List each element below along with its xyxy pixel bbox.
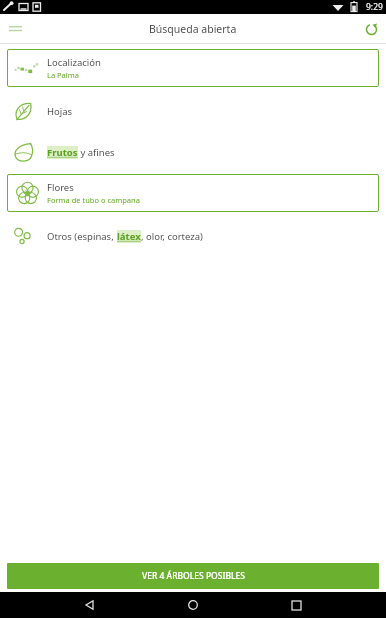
staticText: Búsqueda abierta (149, 22, 237, 36)
staticText: látex (117, 230, 141, 243)
staticText: La Palma (47, 70, 79, 80)
button[interactable]: Home (180, 592, 206, 618)
button[interactable]: Hojas (0, 92, 386, 130)
staticText: Forma de tubo o campana (47, 195, 140, 205)
button[interactable]: Otros (espinas, (0, 217, 386, 255)
staticText: Hojas (47, 105, 73, 118)
button[interactable]: Frutos (0, 133, 386, 171)
button[interactable]: Reset search (356, 14, 386, 44)
button[interactable]: Recent apps (283, 592, 309, 618)
button[interactable]: Flores (7, 174, 379, 212)
staticText: Otros (espinas, (47, 230, 117, 243)
button[interactable]: VER 4 ÁRBOLES POSIBLES (7, 563, 379, 589)
staticText: Frutos (47, 146, 78, 159)
staticText: Localización (47, 56, 101, 69)
staticText: 9:29 (366, 1, 383, 13)
button[interactable]: Menu (0, 14, 30, 44)
staticText: VER 4 ÁRBOLES POSIBLES (142, 570, 245, 582)
staticText: , olor, corteza) (141, 230, 203, 243)
button[interactable]: Back (77, 592, 103, 618)
button[interactable]: Localización (7, 49, 379, 87)
staticText: y afines (78, 146, 115, 159)
button[interactable]: látex (117, 230, 141, 243)
staticText: Flores (47, 181, 74, 194)
button[interactable]: Frutos (47, 146, 78, 159)
